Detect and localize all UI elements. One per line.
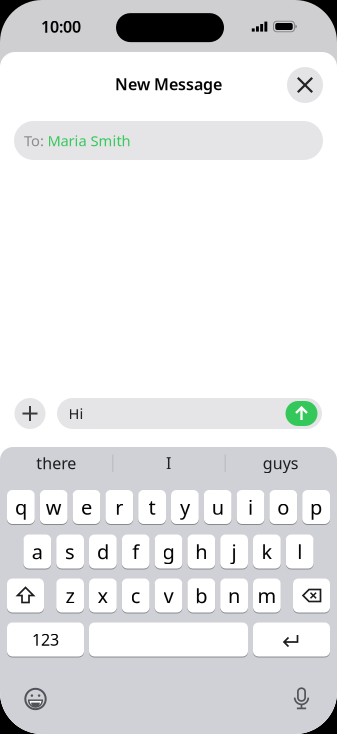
staticText: p	[310, 494, 322, 520]
staticText: l	[297, 538, 302, 565]
staticText: q	[15, 494, 27, 520]
staticText: n	[228, 582, 240, 609]
button[interactable]: x	[89, 577, 117, 613]
button[interactable]: s	[56, 533, 84, 569]
button[interactable]	[287, 67, 323, 103]
staticText: 123	[32, 629, 59, 650]
button[interactable]: v	[155, 577, 182, 613]
button[interactable]	[89, 621, 248, 657]
button[interactable]: w	[40, 489, 68, 525]
staticText: c	[131, 582, 141, 609]
staticText: f	[132, 538, 139, 565]
staticText: r	[115, 494, 123, 520]
button[interactable]: there	[1, 448, 111, 478]
button[interactable]: g	[155, 533, 182, 569]
staticText: t	[149, 494, 156, 520]
button[interactable]: c	[122, 577, 150, 613]
staticText: j	[232, 538, 237, 565]
button[interactable]: a	[23, 533, 51, 569]
button[interactable]: p	[302, 489, 330, 525]
staticText: v	[163, 582, 173, 609]
button[interactable]	[20, 684, 50, 714]
staticText: Maria Smith	[47, 131, 130, 150]
button[interactable]	[14, 398, 45, 429]
staticText: u	[212, 494, 224, 520]
staticText: b	[195, 582, 207, 609]
button[interactable]: l	[286, 533, 314, 569]
staticText: 10:00	[41, 16, 81, 37]
button[interactable]: y	[171, 489, 199, 525]
staticText: New Message	[115, 73, 222, 95]
staticText: d	[97, 538, 109, 565]
button[interactable]: e	[73, 489, 100, 525]
button[interactable]: guys	[226, 448, 336, 478]
button[interactable]: q	[7, 489, 35, 525]
button[interactable]: k	[253, 533, 281, 569]
staticText: To:	[24, 131, 44, 150]
button[interactable]: Hi	[57, 398, 322, 429]
staticText: x	[97, 582, 108, 609]
staticText: I	[166, 452, 171, 474]
staticText: a	[32, 538, 43, 565]
button[interactable]: To:	[14, 121, 323, 160]
staticText: g	[162, 538, 174, 565]
button[interactable]	[253, 621, 330, 657]
staticText: e	[81, 494, 92, 520]
button[interactable]: j	[220, 533, 248, 569]
button[interactable]: f	[122, 533, 150, 569]
staticText: guys	[263, 452, 299, 474]
button[interactable]	[293, 577, 330, 613]
button[interactable]: n	[220, 577, 248, 613]
button[interactable]: u	[204, 489, 232, 525]
staticText: z	[66, 582, 75, 609]
staticText: m	[257, 582, 276, 609]
staticText: k	[261, 538, 272, 565]
button[interactable]: r	[105, 489, 133, 525]
button[interactable]: 123	[7, 621, 84, 657]
button[interactable]: d	[89, 533, 117, 569]
staticText: i	[248, 494, 253, 520]
staticText: y	[180, 494, 190, 520]
button[interactable]: b	[187, 577, 215, 613]
button[interactable]: t	[138, 489, 166, 525]
button[interactable]: h	[187, 533, 215, 569]
staticText: h	[195, 538, 207, 565]
staticText: Hi	[68, 404, 83, 423]
staticText: s	[65, 538, 75, 565]
staticText: w	[46, 494, 62, 520]
button[interactable]: i	[237, 489, 264, 525]
button[interactable]: z	[56, 577, 84, 613]
button[interactable]	[7, 577, 44, 613]
button[interactable]: o	[269, 489, 297, 525]
button[interactable]	[285, 401, 317, 426]
button[interactable]: m	[253, 577, 281, 613]
staticText: there	[36, 452, 76, 474]
staticText: o	[277, 494, 289, 520]
button[interactable]	[286, 684, 316, 714]
button[interactable]: I	[113, 448, 223, 478]
